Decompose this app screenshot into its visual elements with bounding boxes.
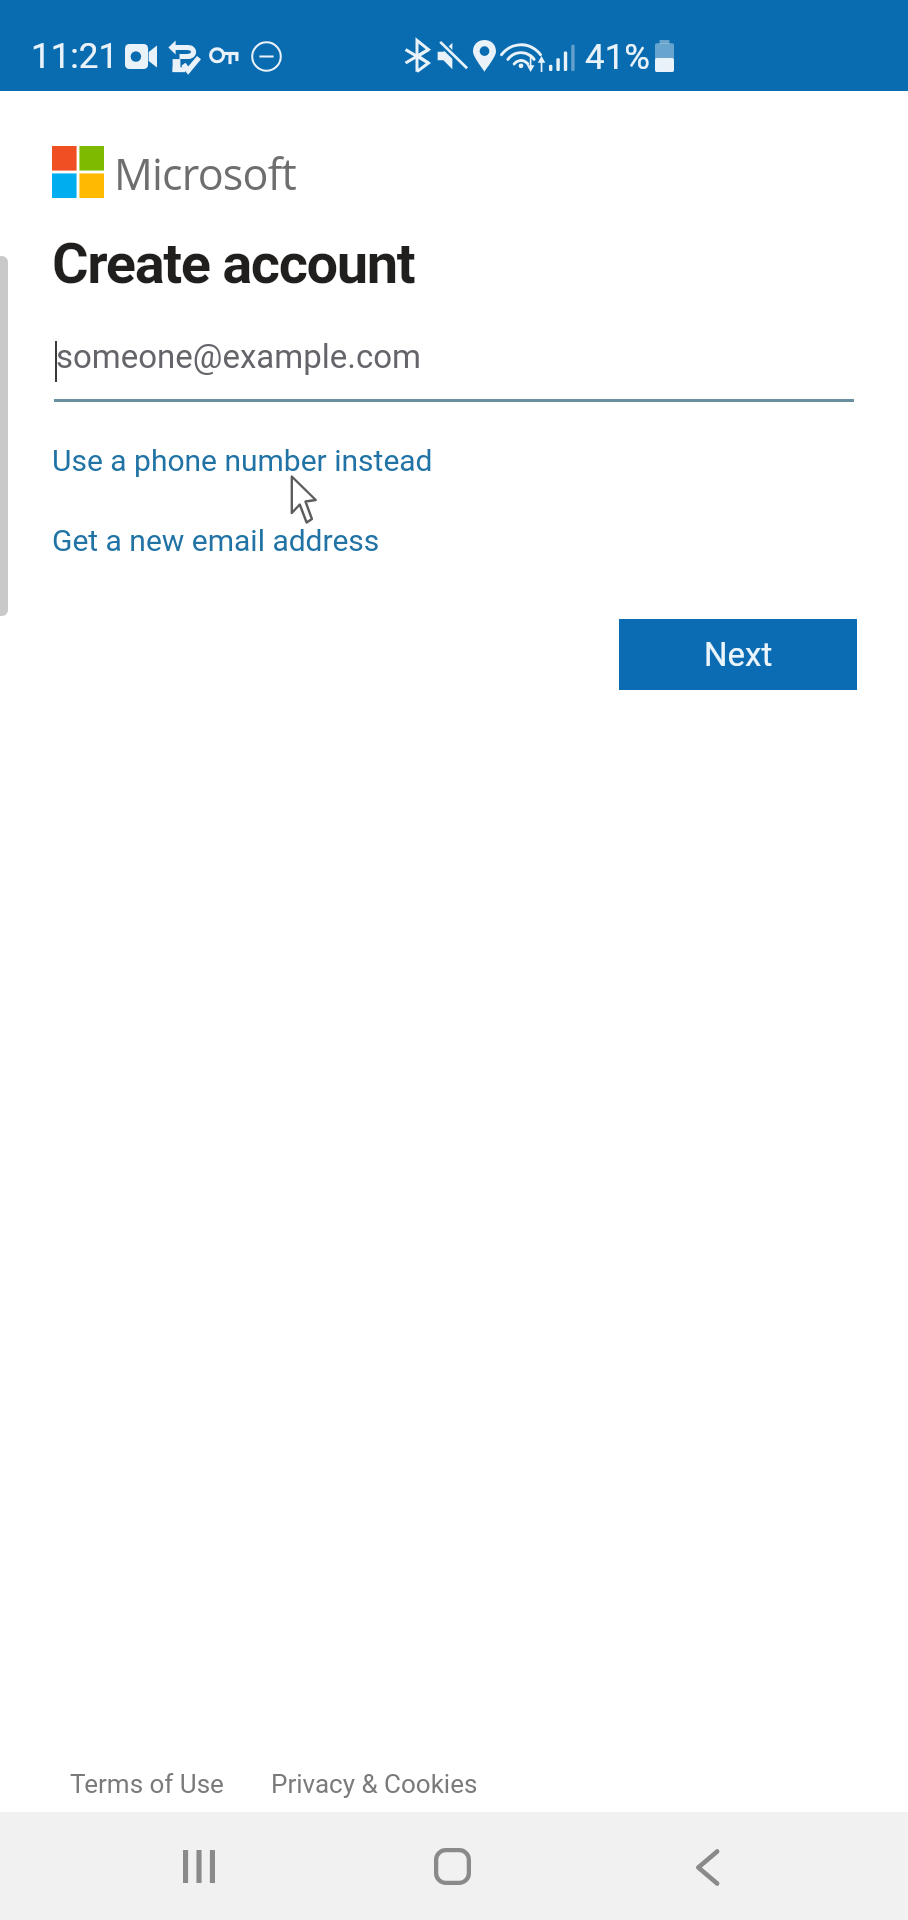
button[interactable]: Terms of Use <box>70 1761 224 1805</box>
staticText: 41% <box>585 37 650 78</box>
staticText: 11:21 <box>31 36 119 77</box>
button[interactable]: Use a phone number instead <box>52 434 433 484</box>
staticText: Microsoft <box>114 144 296 203</box>
button[interactable]: Email or phone input field <box>54 325 854 402</box>
button[interactable]: Back <box>645 1812 769 1920</box>
staticText: Privacy & Cookies <box>271 1769 478 1799</box>
staticText: someone@example.com <box>56 337 422 376</box>
button[interactable]: Home <box>390 1812 514 1920</box>
button[interactable]: Privacy & Cookies <box>271 1761 478 1805</box>
button[interactable]: Get a new email address <box>52 514 380 564</box>
staticText: Get a new email address <box>52 523 380 558</box>
staticText: Terms of Use <box>70 1769 224 1799</box>
staticText: Create account <box>52 231 415 297</box>
button[interactable]: Recent apps <box>137 1812 261 1920</box>
staticText: Use a phone number instead <box>52 443 433 478</box>
button[interactable]: Next <box>619 619 857 690</box>
staticText: Next <box>704 635 773 674</box>
